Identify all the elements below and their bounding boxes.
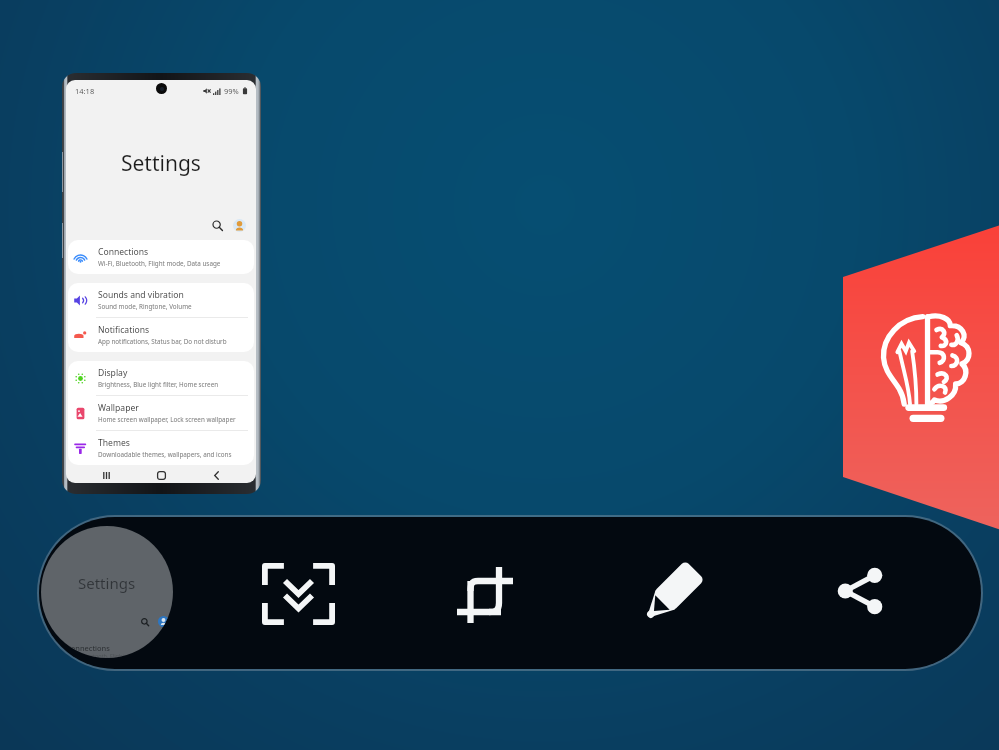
button[interactable]: Share xyxy=(815,549,905,639)
button[interactable]: Search xyxy=(209,217,225,233)
button[interactable]: Profile xyxy=(232,218,247,233)
button[interactable]: Connections xyxy=(68,240,254,274)
staticText: Sound mode, Ringtone, Volume xyxy=(98,302,192,311)
button[interactable]: App logo xyxy=(874,313,980,419)
button[interactable]: Recents xyxy=(98,467,114,483)
staticText: Wi-Fi, Bluetooth, Flight mode xyxy=(66,652,141,658)
staticText: Display xyxy=(98,367,128,379)
staticText: Brightness, Blue light filter, Home scre… xyxy=(98,380,219,389)
button[interactable]: Home xyxy=(153,467,169,483)
staticText: Themes xyxy=(98,437,130,449)
button[interactable]: Crop xyxy=(440,550,530,640)
staticText: 14:18 xyxy=(75,86,95,96)
staticText: Connections xyxy=(98,246,149,258)
button[interactable]: Scroll capture xyxy=(253,549,343,639)
button[interactable]: Themes xyxy=(68,431,254,465)
staticText: Wi-Fi, Bluetooth, Flight mode, Data usag… xyxy=(98,259,221,268)
button[interactable]: Notifications xyxy=(68,318,254,352)
staticText: Settings xyxy=(121,149,201,178)
staticText: Connections xyxy=(66,643,110,653)
staticText: Sounds and vibration xyxy=(98,289,184,301)
button[interactable]: Screenshot preview xyxy=(41,526,173,658)
staticText: Wallpaper xyxy=(98,402,139,414)
staticText: Notifications xyxy=(98,324,150,336)
button[interactable]: Back xyxy=(208,467,224,483)
staticText: Home screen wallpaper, Lock screen wallp… xyxy=(98,415,236,424)
button[interactable]: Display xyxy=(68,361,254,395)
button[interactable]: Wallpaper xyxy=(68,396,254,430)
staticText: App notifications, Status bar, Do not di… xyxy=(98,337,227,346)
staticText: 99% xyxy=(224,86,239,96)
staticText: Downloadable themes, wallpapers, and ico… xyxy=(98,450,232,459)
button[interactable]: Draw xyxy=(627,548,717,638)
staticText: Settings xyxy=(78,573,136,593)
button[interactable]: Sounds and vibration xyxy=(68,283,254,317)
